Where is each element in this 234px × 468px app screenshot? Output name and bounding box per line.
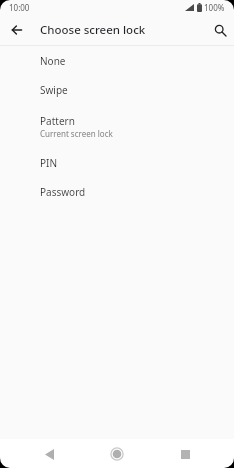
button[interactable] bbox=[211, 21, 229, 39]
staticText: PIN bbox=[40, 156, 58, 170]
button[interactable]: Password bbox=[0, 177, 234, 206]
button[interactable] bbox=[35, 440, 63, 468]
button[interactable] bbox=[171, 440, 199, 468]
staticText: 100% bbox=[204, 2, 225, 13]
staticText: Password bbox=[40, 185, 86, 199]
button[interactable] bbox=[8, 21, 26, 39]
button[interactable] bbox=[103, 440, 131, 468]
staticText: Choose screen lock bbox=[40, 22, 146, 38]
button[interactable]: PIN bbox=[0, 148, 234, 177]
button[interactable]: None bbox=[0, 46, 234, 75]
staticText: Current screen lock bbox=[40, 128, 113, 139]
button[interactable]: Swipe bbox=[0, 75, 234, 104]
staticText: None bbox=[40, 54, 66, 68]
staticText: Swipe bbox=[40, 83, 68, 97]
staticText: Pattern bbox=[40, 114, 75, 128]
button[interactable]: Pattern bbox=[0, 104, 234, 148]
staticText: 10:00 bbox=[9, 2, 30, 13]
